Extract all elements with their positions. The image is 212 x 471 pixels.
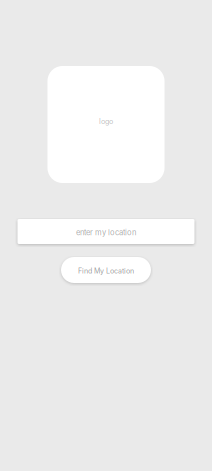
button[interactable]: enter my location <box>17 219 194 244</box>
staticText: Find My Location <box>78 267 134 275</box>
staticText: logo <box>99 117 113 126</box>
button[interactable]: Find My Location <box>61 257 151 283</box>
staticText: enter my location <box>76 228 136 237</box>
